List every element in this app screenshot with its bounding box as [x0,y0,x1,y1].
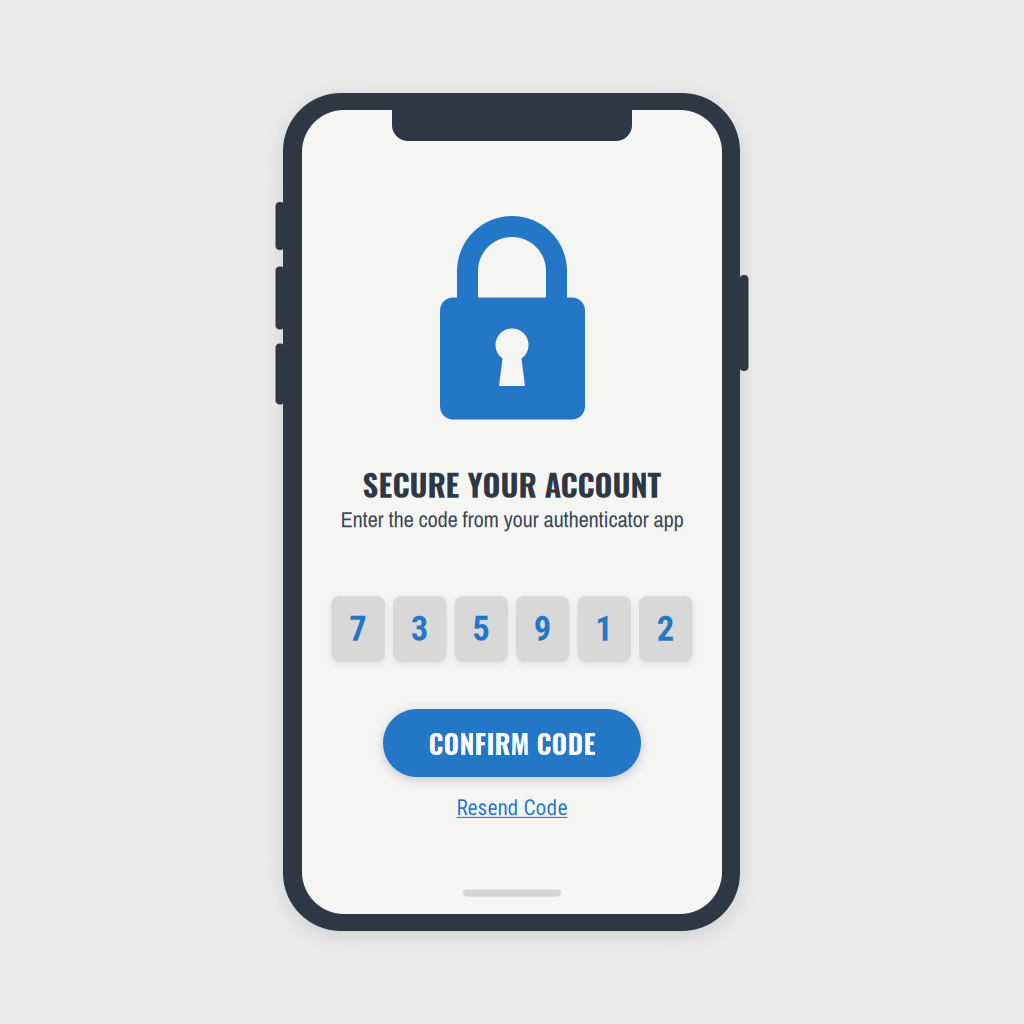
button[interactable]: Code digit 3 [393,596,446,662]
staticText: 9 [534,609,552,649]
staticText: SECURE YOUR ACCOUNT [362,461,661,507]
button[interactable]: Code digit 1 [577,596,631,662]
staticText: 7 [349,609,367,649]
staticText: 3 [411,609,429,649]
button[interactable]: Code digit 5 [454,596,508,662]
staticText: Resend Code [456,795,567,820]
button[interactable]: CONFIRM CODE [383,709,641,777]
button[interactable]: Code digit 2 [639,596,692,662]
staticText: 1 [595,609,613,649]
button[interactable]: Code digit 9 [516,596,569,662]
button[interactable]: Code digit 7 [331,596,385,662]
staticText: Enter the code from your authenticator a… [340,504,683,534]
staticText: 5 [472,609,490,649]
staticText: CONFIRM CODE [428,723,595,763]
staticText: 2 [657,609,675,649]
button[interactable]: Resend Code [437,791,587,825]
